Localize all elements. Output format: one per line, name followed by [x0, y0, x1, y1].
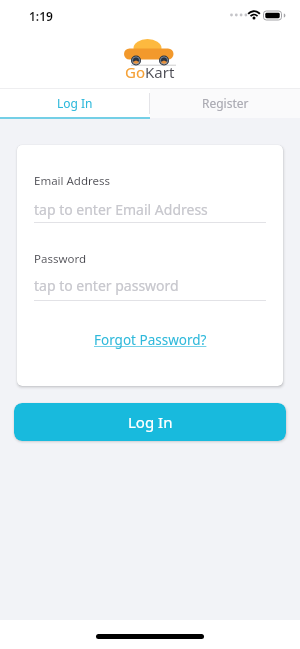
button[interactable]: Log In	[0, 88, 150, 118]
button[interactable]: tap to enter Email Address	[34, 200, 266, 221]
button[interactable]: Log In	[14, 403, 286, 441]
staticText: Log In	[57, 95, 93, 111]
staticText: 1:19	[29, 8, 53, 24]
button[interactable]: tap to enter password	[34, 276, 266, 299]
staticText: Log In	[128, 412, 173, 432]
button[interactable]: Forgot Password?	[94, 331, 207, 349]
staticText: tap to enter Email Address	[34, 200, 208, 219]
staticText: Password	[34, 251, 87, 267]
staticText: tap to enter password	[34, 276, 179, 295]
staticText: GoKart	[125, 62, 175, 82]
staticText: Email Address	[34, 173, 111, 189]
button[interactable]: Register	[150, 88, 300, 118]
staticText: Register	[202, 95, 249, 111]
